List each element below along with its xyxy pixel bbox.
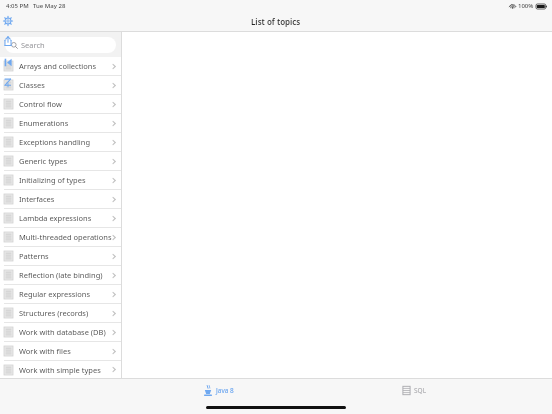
staticText: Work with database (DB)	[19, 327, 112, 337]
staticText: Initializing of types	[19, 175, 112, 185]
staticText: Arrays and collections	[19, 61, 112, 71]
button[interactable]: Interfaces	[0, 190, 121, 209]
button[interactable]: Share	[0, 33, 16, 49]
staticText: Control flow	[19, 99, 112, 109]
staticText: Interfaces	[19, 194, 112, 204]
staticText: Reflection (late binding)	[19, 270, 112, 280]
staticText: Tue May 28	[33, 2, 66, 10]
button[interactable]: Skip to start	[0, 54, 16, 70]
button[interactable]: Sort	[0, 74, 16, 90]
staticText: Exceptions handling	[19, 137, 112, 147]
staticText: Enumerations	[19, 118, 112, 128]
button[interactable]: Structures (records)	[0, 304, 121, 323]
staticText: Structures (records)	[19, 308, 112, 318]
staticText: Work with simple types	[19, 365, 112, 375]
staticText: Multi-threaded operations	[19, 232, 112, 242]
button[interactable]: Multi-threaded operations	[0, 228, 121, 247]
staticText: Regular expressions	[19, 289, 112, 299]
staticText: 100%	[518, 2, 534, 10]
button[interactable]: Java 8	[195, 383, 242, 398]
button[interactable]: Classes	[0, 76, 121, 95]
staticText: Patterns	[19, 251, 112, 261]
staticText: List of topics	[251, 16, 301, 27]
staticText: Lambda expressions	[19, 213, 112, 223]
button[interactable]: Arrays and collections	[0, 57, 121, 76]
button[interactable]: Work with database (DB)	[0, 323, 121, 342]
button[interactable]: SQL	[394, 383, 435, 398]
button[interactable]: Patterns	[0, 247, 121, 266]
button[interactable]: Lambda expressions	[0, 209, 121, 228]
button[interactable]: Regular expressions	[0, 285, 121, 304]
staticText: Classes	[19, 80, 112, 90]
button[interactable]: Control flow	[0, 95, 121, 114]
staticText: Generic types	[19, 156, 112, 166]
button[interactable]: Exceptions handling	[0, 133, 121, 152]
staticText: Java 8	[216, 386, 234, 395]
staticText: SQL	[414, 386, 427, 395]
staticText: 4:05 PM	[6, 2, 29, 10]
staticText: Work with files	[19, 346, 112, 356]
button[interactable]: Enumerations	[0, 114, 121, 133]
staticText: Search	[21, 40, 45, 50]
button[interactable]: Initializing of types	[0, 171, 121, 190]
button[interactable]: Search	[5, 37, 116, 53]
button[interactable]: Reflection (late binding)	[0, 266, 121, 285]
button[interactable]: Work with simple types	[0, 361, 121, 378]
button[interactable]: Generic types	[0, 152, 121, 171]
button[interactable]: Work with files	[0, 342, 121, 361]
button[interactable]: Settings	[0, 13, 16, 29]
